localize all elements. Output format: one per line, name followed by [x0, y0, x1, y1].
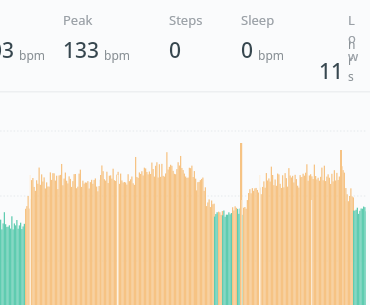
staticText: 0 — [241, 36, 254, 65]
button[interactable]: Sleep — [241, 0, 319, 65]
staticText: bpm — [258, 47, 284, 63]
staticText: 103 — [0, 36, 15, 65]
staticText: Peak — [63, 11, 93, 29]
staticText: Steps — [169, 11, 203, 29]
button[interactable]: Heart rate chart — [0, 0, 370, 305]
staticText: 11 — [319, 57, 344, 86]
staticText: bpm — [19, 47, 45, 63]
staticText: bpm — [104, 47, 130, 63]
staticText: Sleep — [241, 11, 275, 29]
staticText: 0 — [169, 36, 182, 65]
button[interactable]: Peak — [63, 0, 169, 65]
staticText: 133 — [63, 36, 100, 65]
button[interactable]: Avg — [0, 0, 63, 65]
button[interactable]: 11 — [319, 0, 348, 86]
button[interactable]: Steps — [169, 0, 241, 65]
